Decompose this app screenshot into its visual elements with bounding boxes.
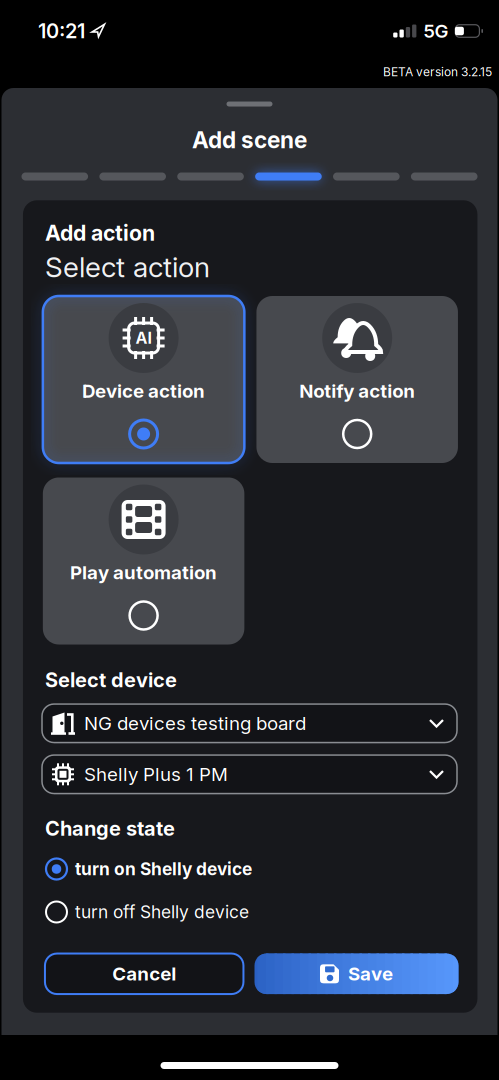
button[interactable]: Cancel <box>45 953 243 994</box>
staticText: Notify action <box>299 380 415 402</box>
staticText: Select device <box>45 668 177 692</box>
button[interactable]: NG devices testing board <box>42 704 457 742</box>
staticText: Save <box>348 963 393 985</box>
button[interactable]: Play automation <box>43 477 244 644</box>
staticText: Add scene <box>192 127 307 153</box>
staticText: Play automation <box>70 561 217 583</box>
staticText: BETA version 3.2.15 <box>383 65 492 79</box>
staticText: Select action <box>45 250 210 283</box>
staticText: Cancel <box>112 963 176 985</box>
staticText: AI <box>136 329 152 347</box>
button[interactable]: AI <box>43 296 244 463</box>
staticText: Device action <box>82 380 205 402</box>
staticText: 10:21 <box>38 19 85 43</box>
button[interactable]: turn off Shelly device <box>46 901 454 922</box>
button[interactable]: turn on Shelly device <box>46 858 454 879</box>
button[interactable]: Shelly Plus 1 PM <box>42 755 457 793</box>
staticText: Add action <box>45 220 155 246</box>
staticText: Change state <box>45 817 175 840</box>
staticText: turn off Shelly device <box>75 902 249 922</box>
staticText: 5G <box>423 20 448 42</box>
staticText: Shelly Plus 1 PM <box>84 763 228 785</box>
staticText: turn on Shelly device <box>75 859 252 879</box>
staticText: NG devices testing board <box>84 712 306 734</box>
button[interactable]: Notify action <box>256 296 458 463</box>
button[interactable]: Save <box>254 953 458 994</box>
